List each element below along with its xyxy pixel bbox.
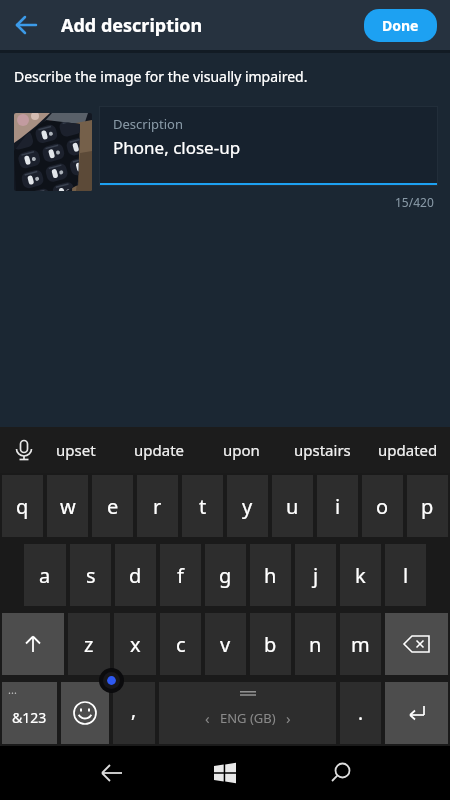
staticText: r bbox=[153, 493, 162, 520]
button[interactable]: ... bbox=[2, 682, 57, 744]
button[interactable]: f bbox=[160, 544, 201, 606]
staticText: ENG (GB) bbox=[220, 709, 276, 727]
button[interactable]: r bbox=[137, 475, 178, 537]
button[interactable] bbox=[88, 746, 136, 800]
button[interactable]: s bbox=[70, 544, 111, 606]
staticText: 15/420 bbox=[395, 194, 434, 210]
staticText: q bbox=[16, 493, 29, 520]
staticText: updated bbox=[378, 440, 438, 460]
button[interactable]: upset bbox=[35, 427, 117, 473]
button[interactable]: update bbox=[117, 427, 202, 473]
staticText: k bbox=[355, 562, 366, 589]
button[interactable]: u bbox=[272, 475, 313, 537]
button[interactable]: q bbox=[2, 475, 43, 537]
staticText: Done bbox=[382, 16, 419, 35]
button[interactable] bbox=[14, 113, 92, 191]
button[interactable]: l bbox=[385, 544, 426, 606]
staticText: g bbox=[219, 562, 232, 589]
staticText: d bbox=[129, 562, 142, 589]
staticText: upset bbox=[56, 440, 96, 460]
staticText: &123 bbox=[12, 708, 47, 727]
button[interactable]: t bbox=[182, 475, 223, 537]
button[interactable]: k bbox=[340, 544, 381, 606]
button[interactable]: , bbox=[113, 682, 155, 744]
button[interactable]: i bbox=[317, 475, 358, 537]
staticText: ... bbox=[8, 682, 17, 697]
staticText: w bbox=[60, 493, 76, 520]
button[interactable]: ‹ bbox=[159, 682, 336, 744]
staticText: z bbox=[84, 631, 94, 658]
button[interactable] bbox=[385, 682, 448, 744]
staticText: . bbox=[358, 700, 364, 726]
button[interactable] bbox=[201, 746, 249, 800]
button[interactable]: updated bbox=[365, 427, 450, 473]
button[interactable] bbox=[316, 746, 364, 800]
staticText: p bbox=[421, 493, 434, 520]
staticText: h bbox=[264, 562, 277, 589]
button[interactable] bbox=[13, 439, 35, 461]
staticText: o bbox=[376, 493, 389, 520]
button[interactable]: b bbox=[250, 613, 291, 675]
staticText: y bbox=[242, 493, 253, 520]
button[interactable]: . bbox=[340, 682, 381, 744]
staticText: l bbox=[403, 562, 409, 589]
staticText: Add description bbox=[61, 13, 203, 38]
staticText: , bbox=[131, 697, 137, 723]
staticText: m bbox=[351, 631, 370, 658]
button[interactable]: y bbox=[227, 475, 268, 537]
staticText: update bbox=[134, 440, 185, 460]
staticText: u bbox=[286, 493, 299, 520]
button[interactable]: j bbox=[295, 544, 336, 606]
staticText: v bbox=[220, 631, 231, 658]
button[interactable] bbox=[2, 613, 64, 675]
button[interactable]: m bbox=[340, 613, 381, 675]
button[interactable]: Description bbox=[99, 106, 438, 186]
staticText: s bbox=[86, 562, 96, 589]
button[interactable]: d bbox=[115, 544, 156, 606]
staticText: c bbox=[176, 631, 186, 658]
button[interactable] bbox=[385, 613, 448, 675]
staticText: a bbox=[39, 562, 51, 589]
button[interactable]: p bbox=[407, 475, 448, 537]
staticText: Describe the image for the visually impa… bbox=[14, 67, 308, 86]
button[interactable]: w bbox=[47, 475, 88, 537]
button[interactable]: n bbox=[295, 613, 336, 675]
button[interactable]: e bbox=[92, 475, 133, 537]
staticText: b bbox=[264, 631, 277, 658]
button[interactable]: Done bbox=[364, 9, 437, 42]
staticText: › bbox=[286, 708, 291, 728]
button[interactable] bbox=[13, 12, 39, 38]
staticText: e bbox=[107, 493, 119, 520]
button[interactable] bbox=[61, 682, 109, 744]
button[interactable]: o bbox=[362, 475, 403, 537]
button[interactable]: x bbox=[114, 613, 156, 675]
staticText: j bbox=[313, 562, 319, 589]
button[interactable]: h bbox=[250, 544, 291, 606]
button[interactable]: c bbox=[160, 613, 201, 675]
staticText: ‹ bbox=[205, 708, 210, 728]
staticText: upon bbox=[223, 440, 260, 460]
staticText: t bbox=[199, 493, 207, 520]
staticText: Description bbox=[113, 115, 183, 133]
button[interactable]: a bbox=[24, 544, 66, 606]
staticText: f bbox=[177, 562, 184, 589]
staticText: i bbox=[335, 493, 341, 520]
staticText: x bbox=[130, 631, 141, 658]
button[interactable]: g bbox=[205, 544, 246, 606]
staticText: Phone, close-up bbox=[113, 136, 241, 159]
button[interactable]: upstairs bbox=[280, 427, 365, 473]
staticText: n bbox=[309, 631, 322, 658]
staticText: upstairs bbox=[294, 440, 351, 460]
button[interactable]: z bbox=[68, 613, 110, 675]
button[interactable]: upon bbox=[202, 427, 280, 473]
button[interactable]: v bbox=[205, 613, 246, 675]
